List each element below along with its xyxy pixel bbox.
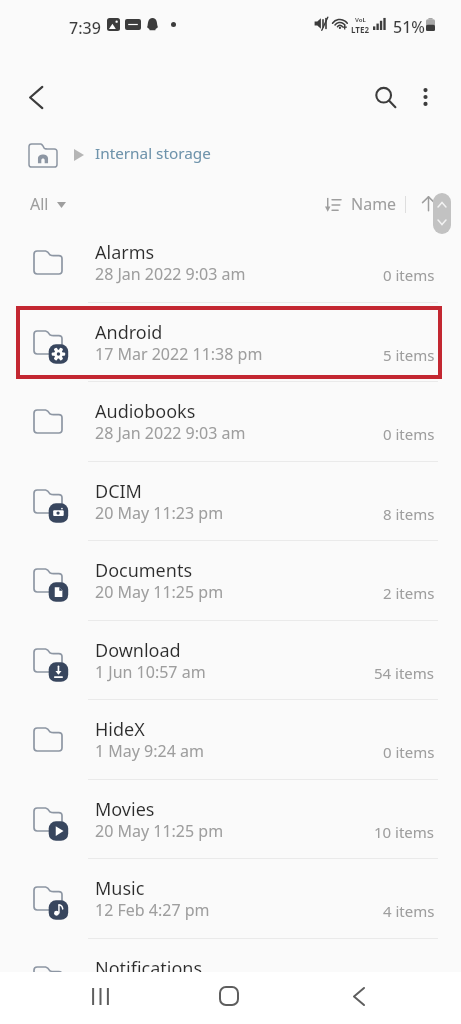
staticText: Download [95,638,181,663]
button[interactable]: Android [0,302,461,382]
button[interactable]: Search [362,74,408,120]
button[interactable]: All [30,193,66,215]
button[interactable]: HideX [0,699,461,779]
staticText: 1 Jun 10:57 am [95,661,206,683]
staticText: VoL [355,16,366,24]
button[interactable]: Back [335,972,383,1020]
staticText: Notifications [95,956,203,972]
staticText: 5 items [383,345,435,365]
staticText: Movies [95,797,155,822]
button[interactable]: Home [205,972,253,1020]
staticText: HideX [95,717,145,742]
button[interactable]: Documents [0,540,461,620]
button[interactable]: Sort order ascending [416,189,440,219]
staticText: Documents [95,558,193,583]
staticText: DCIM [95,479,142,504]
staticText: 20 May 11:25 pm [95,581,224,603]
staticText: Music [95,876,145,901]
staticText: 28 Jan 2022 9:03 am [95,263,246,285]
staticText: Audiobooks [95,399,196,424]
staticText: Internal storage [95,143,211,164]
button[interactable]: DCIM [0,461,461,541]
staticText: 20 May 11:25 pm [95,820,224,842]
staticText: 54 items [374,663,435,683]
button[interactable]: Download [0,620,461,700]
button[interactable]: Movies [0,779,461,859]
staticText: 17 Mar 2022 11:38 pm [95,343,263,365]
staticText: LTE2 [351,24,369,35]
staticText: 0 items [383,424,435,444]
button[interactable]: Scroll [433,193,451,234]
button[interactable]: Notifications [0,938,461,972]
button[interactable]: Recents [76,972,124,1020]
staticText: 2 items [383,583,435,603]
staticText: 8 items [383,504,435,524]
button[interactable]: Audiobooks [0,381,461,461]
staticText: 7:39 [69,17,101,39]
staticText: Name [351,193,397,215]
button[interactable]: More options [402,74,448,120]
button[interactable]: Name [325,193,397,215]
staticText: 4 items [383,901,435,921]
staticText: 20 May 11:23 pm [95,502,224,524]
staticText: 10 items [374,822,435,842]
staticText: 0 items [383,742,435,762]
staticText: All [30,193,49,215]
staticText: 51% [393,16,425,38]
button[interactable]: Navigate up [13,74,59,120]
staticText: 1 May 9:24 am [95,740,204,762]
button[interactable]: Alarms [0,222,461,302]
staticText: 0 items [383,265,435,285]
staticText: 12 Feb 4:27 pm [95,899,210,921]
button[interactable]: Internal storage [29,142,211,165]
button[interactable]: Music [0,858,461,938]
staticText: Android [95,320,163,345]
staticText: Alarms [95,240,155,265]
staticText: 28 Jan 2022 9:03 am [95,422,246,444]
